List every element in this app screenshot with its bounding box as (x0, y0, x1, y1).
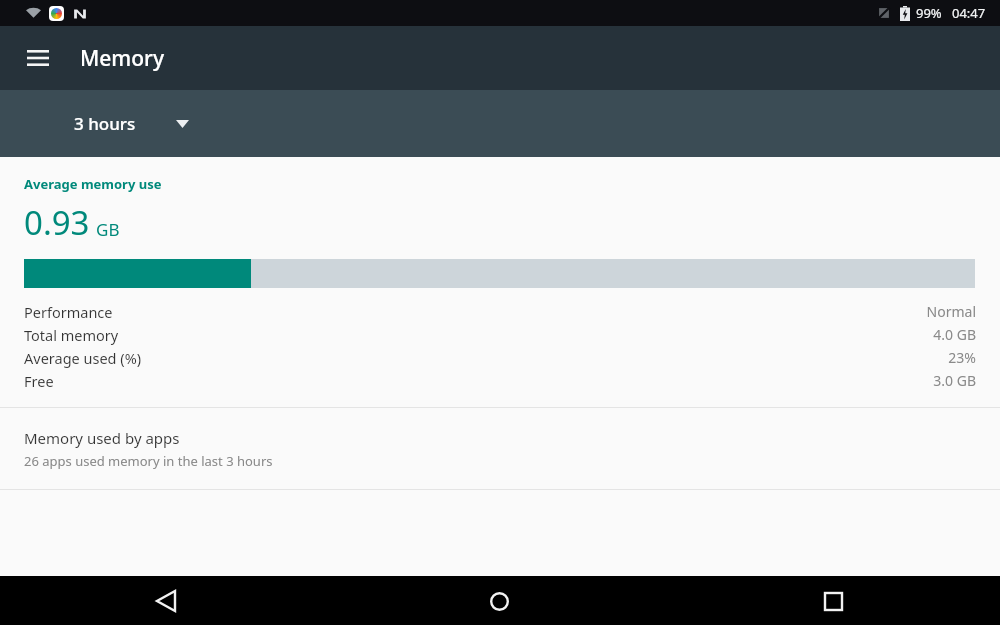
button[interactable]: Open navigation drawer (16, 36, 60, 80)
button[interactable]: Memory used by apps (0, 408, 1000, 489)
staticText: Normal (926, 302, 976, 321)
staticText: Average memory use (24, 175, 162, 193)
staticText: GB (96, 218, 120, 241)
staticText: Free (24, 371, 54, 391)
staticText: Performance (24, 302, 113, 322)
staticText: Average used (%) (24, 348, 142, 368)
staticText: 04:47 (952, 4, 986, 22)
staticText: Memory used by apps (24, 428, 180, 448)
staticText: 3.0 GB (933, 371, 976, 390)
button[interactable]: Recent apps (809, 577, 857, 625)
staticText: Total memory (24, 325, 119, 345)
staticText: 99% (916, 4, 942, 22)
staticText: 4.0 GB (933, 325, 976, 344)
staticText: 3 hours (74, 112, 136, 135)
button[interactable]: Home (475, 577, 523, 625)
button[interactable]: Back (142, 577, 190, 625)
button[interactable]: 3 hours (62, 102, 201, 145)
staticText: 23% (948, 348, 976, 367)
staticText: 0.93 (24, 200, 90, 245)
staticText: Memory (80, 44, 165, 73)
staticText: 26 apps used memory in the last 3 hours (24, 452, 273, 470)
